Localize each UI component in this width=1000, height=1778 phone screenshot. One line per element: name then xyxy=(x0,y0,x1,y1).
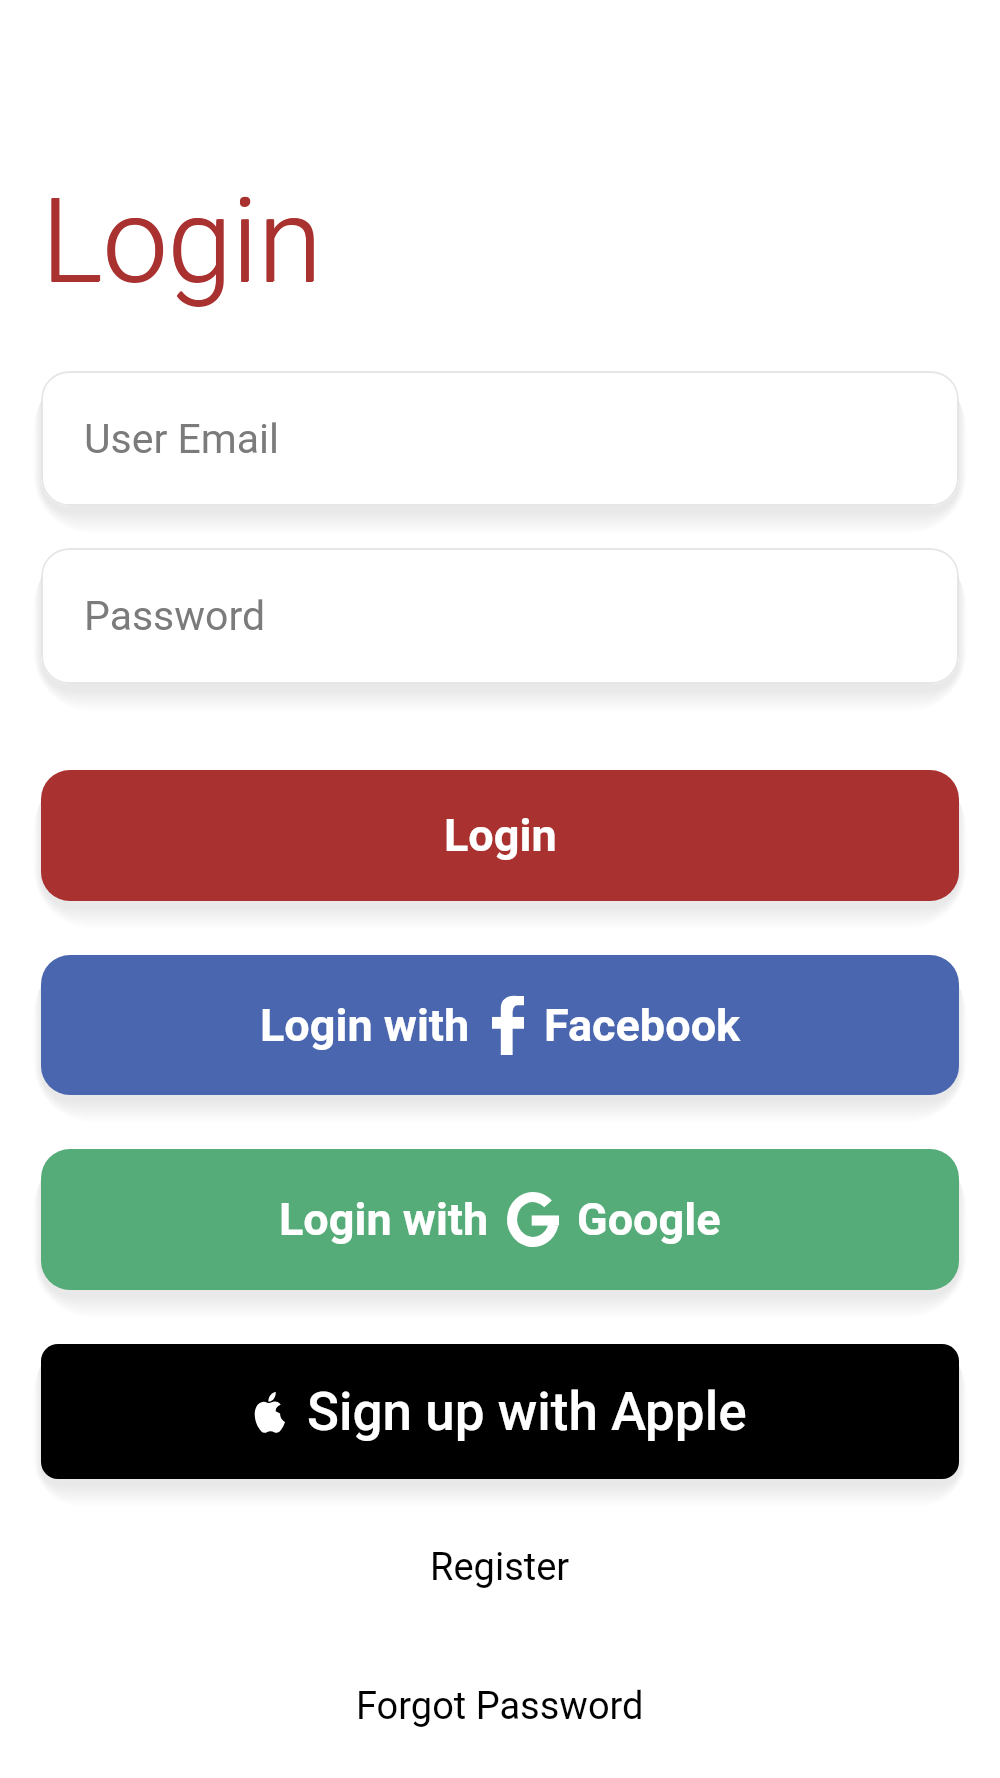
other: Apple xyxy=(253,1392,285,1433)
other: Facebook xyxy=(492,996,524,1055)
staticText: Login xyxy=(42,173,323,309)
button[interactable]: Login with xyxy=(41,955,959,1095)
staticText: Sign up with Apple xyxy=(307,1381,747,1443)
button[interactable]: Apple xyxy=(41,1344,959,1479)
staticText: Login xyxy=(41,174,322,310)
staticText: User Email xyxy=(84,415,280,463)
button[interactable]: Password xyxy=(41,548,959,684)
staticText: Login with xyxy=(279,1193,489,1246)
button[interactable]: Forgot Password xyxy=(0,1670,1000,1742)
staticText: Login with xyxy=(260,999,470,1052)
button[interactable]: Login with xyxy=(41,1149,959,1290)
staticText: Login xyxy=(41,173,322,309)
other: Google xyxy=(507,1192,559,1247)
staticText: Register xyxy=(430,1545,570,1590)
staticText: Login xyxy=(444,809,557,862)
button[interactable]: User Email xyxy=(41,371,959,506)
button[interactable]: Login xyxy=(41,770,959,901)
staticText: Forgot Password xyxy=(356,1684,644,1729)
staticText: Password xyxy=(84,592,266,640)
staticText: Google xyxy=(577,1193,721,1246)
button[interactable]: Register xyxy=(0,1531,1000,1603)
staticText: Facebook xyxy=(544,999,741,1052)
